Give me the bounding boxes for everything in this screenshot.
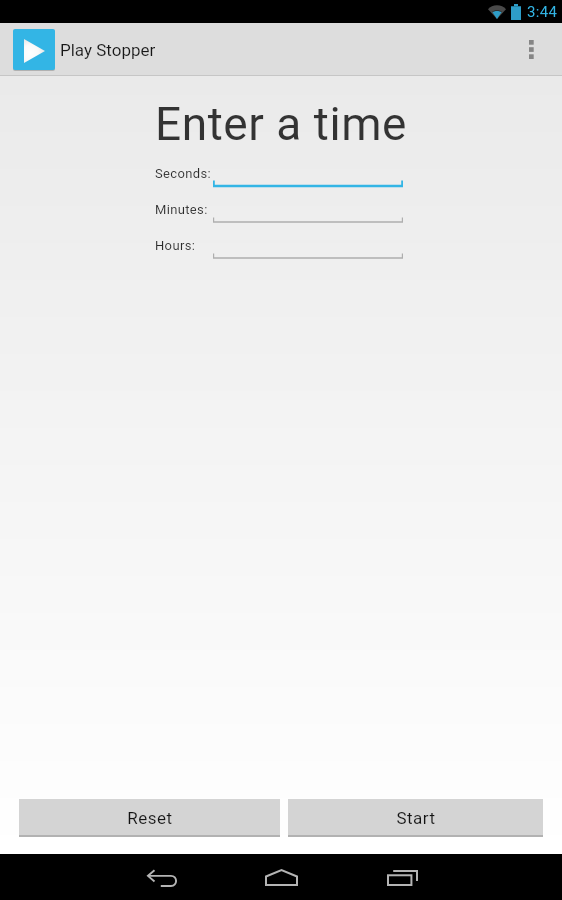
button[interactable]: Play Stopper icon [13,29,55,70]
staticText: Reset [127,808,173,828]
staticText: Play Stopper [60,40,156,60]
staticText: Start [396,808,436,828]
button[interactable]: Start [288,799,543,837]
button[interactable]: Home [211,854,351,900]
staticText: Minutes: [155,202,208,217]
button[interactable]: Recent apps [332,856,472,900]
button[interactable]: Reset [19,799,280,837]
button[interactable]: More options [508,23,562,74]
staticText: Enter a time [155,97,407,151]
staticText: Seconds: [155,166,211,181]
button[interactable] [213,166,403,192]
staticText: Hours: [155,238,196,253]
staticText: 3:44 [527,3,558,21]
button[interactable]: Back [92,857,232,900]
button[interactable] [213,202,403,228]
button[interactable] [213,238,403,264]
